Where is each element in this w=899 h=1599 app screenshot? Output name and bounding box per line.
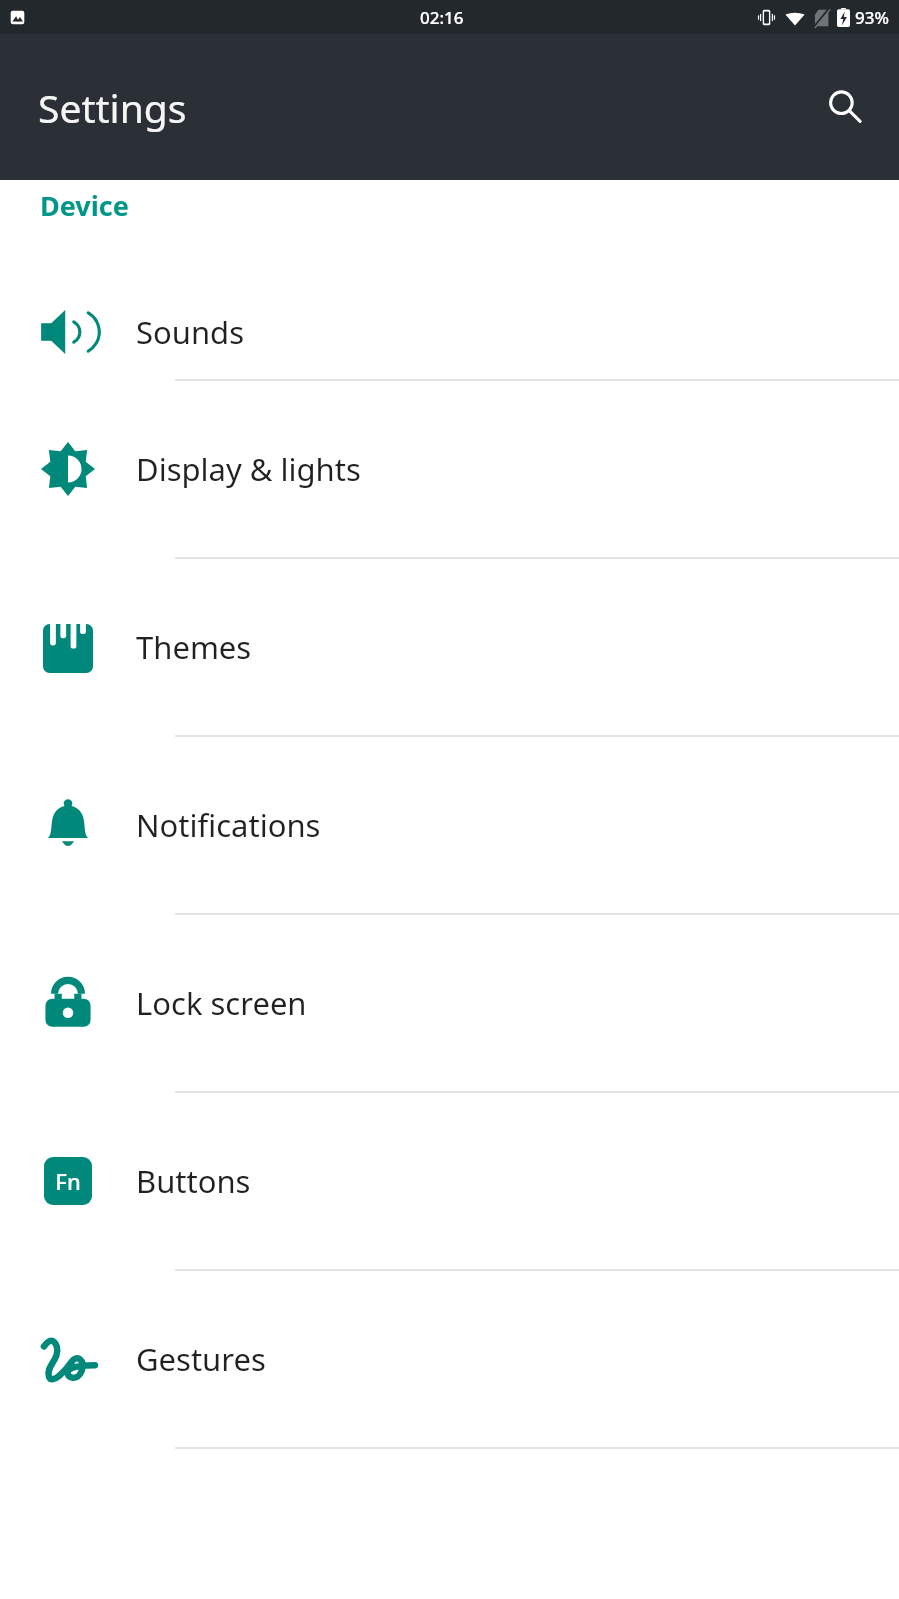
button[interactable]: Themes xyxy=(0,559,899,737)
staticText: 93% xyxy=(855,6,889,29)
staticText: Sounds xyxy=(136,311,245,353)
button[interactable]: Gestures xyxy=(0,1271,899,1449)
staticText: Settings xyxy=(38,81,187,134)
button[interactable]: Lock screen xyxy=(0,915,899,1093)
staticText: Lock screen xyxy=(136,982,307,1024)
staticText: Gestures xyxy=(136,1338,266,1380)
button[interactable]: Sounds xyxy=(0,284,899,381)
button[interactable]: Fn xyxy=(0,1093,899,1271)
staticText: Device xyxy=(40,187,129,224)
button[interactable]: Search xyxy=(815,77,875,137)
staticText: Themes xyxy=(136,626,252,668)
staticText: 02:16 xyxy=(420,6,464,29)
staticText: Buttons xyxy=(136,1160,251,1202)
staticText: Notifications xyxy=(136,804,321,846)
button[interactable]: Display & lights xyxy=(0,381,899,559)
staticText: Display & lights xyxy=(136,448,361,490)
button[interactable]: Notifications xyxy=(0,737,899,915)
staticText: Fn xyxy=(55,1166,81,1196)
